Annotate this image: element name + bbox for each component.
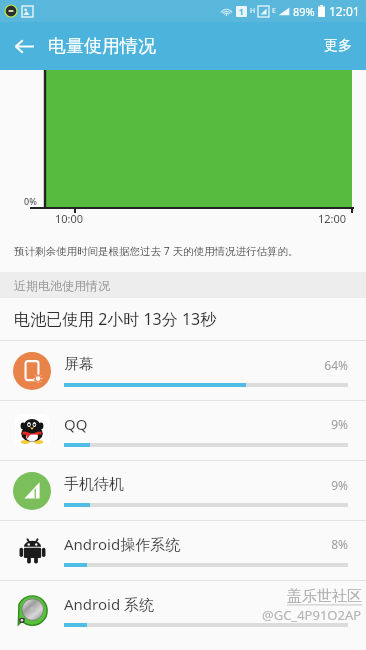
staticText: @GC_4P91O2AP [262,606,362,624]
button[interactable]: QQ [0,401,366,460]
staticText: 64% [324,357,348,373]
staticText: 12:01 [329,3,360,19]
button[interactable]: 手机待机 [0,461,366,520]
staticText: QQ [64,414,331,434]
staticText: Android操作系统 [64,534,331,554]
staticText: H [250,6,256,16]
staticText: Android 系统 [64,594,348,614]
button[interactable]: 返回 [0,22,48,70]
button[interactable]: 更多 [324,37,352,55]
staticText: 1 [239,6,244,17]
button[interactable]: 屏幕 [0,341,366,400]
staticText: 12:00 [318,211,347,226]
staticText: 屏幕 [64,355,324,374]
button[interactable]: Android操作系统 [0,521,366,580]
staticText: 电池已使用 2小时 13分 13秒 [14,308,217,330]
button[interactable]: 电量使用情况 [48,35,156,58]
button[interactable]: Android 系统 [0,581,366,640]
staticText: 0% [24,195,37,207]
staticText: 9% [331,477,348,493]
staticText: 近期电池使用情况 [14,278,110,293]
staticText: 10:00 [55,211,84,226]
staticText: 预计剩余使用时间是根据您过去 7 天的使用情况进行估算的。 [14,244,299,258]
staticText: 89% [293,4,315,19]
staticText: 手机待机 [64,475,331,494]
staticText: E [272,6,276,16]
staticText: 盖乐世社区 [287,587,362,606]
staticText: 8% [331,536,348,552]
staticText: 9% [331,416,348,432]
